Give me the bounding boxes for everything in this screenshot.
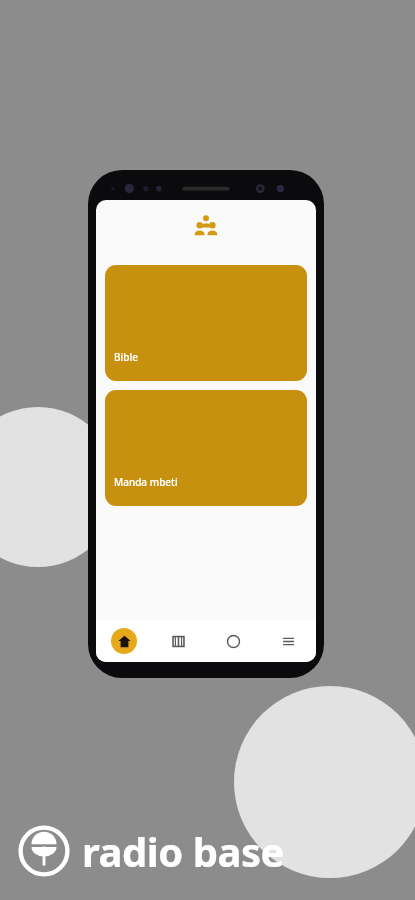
staticText: Manda mbeti <box>114 475 178 489</box>
button[interactable]: Library <box>151 620 206 662</box>
button[interactable]: Menu <box>261 620 316 662</box>
button[interactable]: Explore <box>206 620 261 662</box>
button[interactable]: Home <box>96 620 151 662</box>
staticText: radio base <box>82 824 284 878</box>
button[interactable]: Group logo <box>193 213 219 239</box>
staticText: Bible <box>114 350 138 364</box>
button[interactable]: Manda mbeti <box>105 390 307 506</box>
button[interactable]: Bible <box>105 265 307 381</box>
